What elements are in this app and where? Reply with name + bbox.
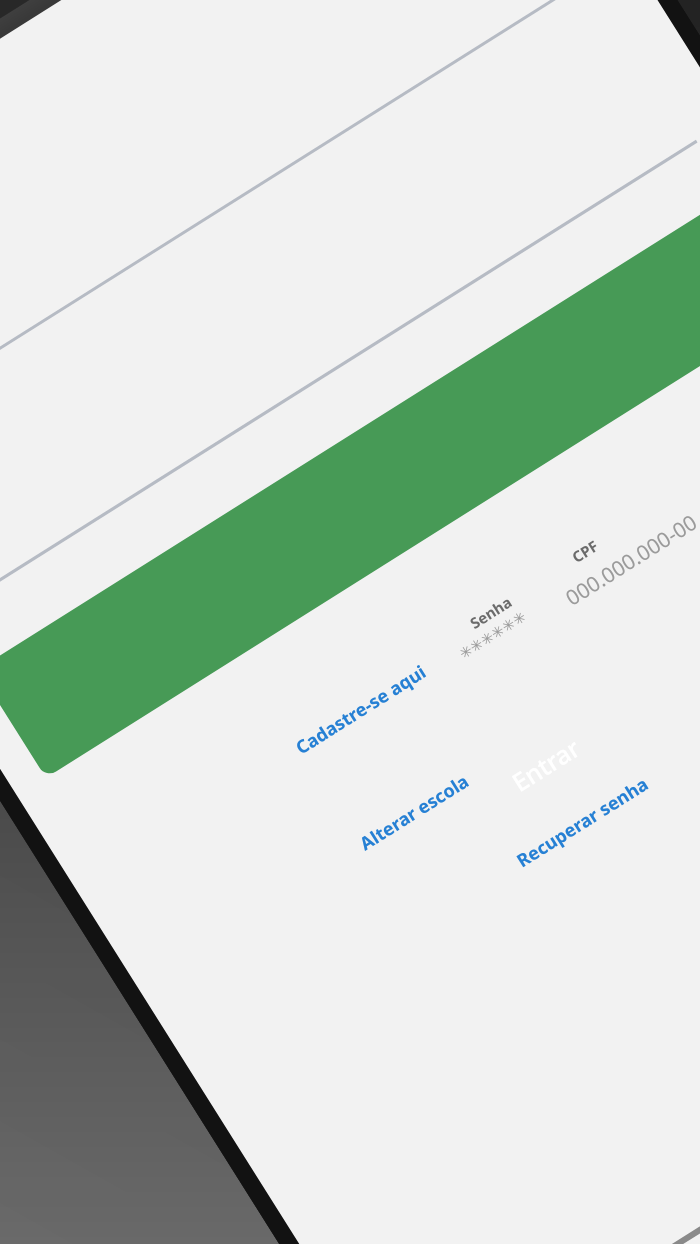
button[interactable]: Senha: [466, 591, 516, 633]
staticText: Recuperar senha: [512, 771, 653, 873]
button[interactable]: Alterar escola: [355, 768, 474, 856]
button[interactable]: ✳✳✳✳✳✳: [456, 607, 529, 662]
button[interactable]: Sua escola: [211, 86, 489, 165]
staticText: 000.000.000-00: [560, 507, 700, 612]
staticText: Alterar escola: [355, 768, 474, 856]
button[interactable]: Cadastre-se aqui: [291, 659, 431, 760]
button[interactable]: Recuperar senha: [512, 771, 653, 873]
staticText: Entrar: [505, 730, 587, 799]
button[interactable]: CPF: [568, 535, 602, 567]
staticText: CPF: [568, 535, 602, 567]
staticText: Cadastre-se aqui: [291, 659, 431, 760]
button[interactable]: Entrar: [505, 730, 587, 799]
staticText: na palma da sua mão: [228, 181, 472, 215]
button[interactable]: 000.000.000-00: [560, 507, 700, 612]
staticText: Sua escola: [211, 86, 489, 165]
staticText: ✳✳✳✳✳✳: [456, 607, 529, 662]
staticText: Senha: [466, 591, 516, 633]
